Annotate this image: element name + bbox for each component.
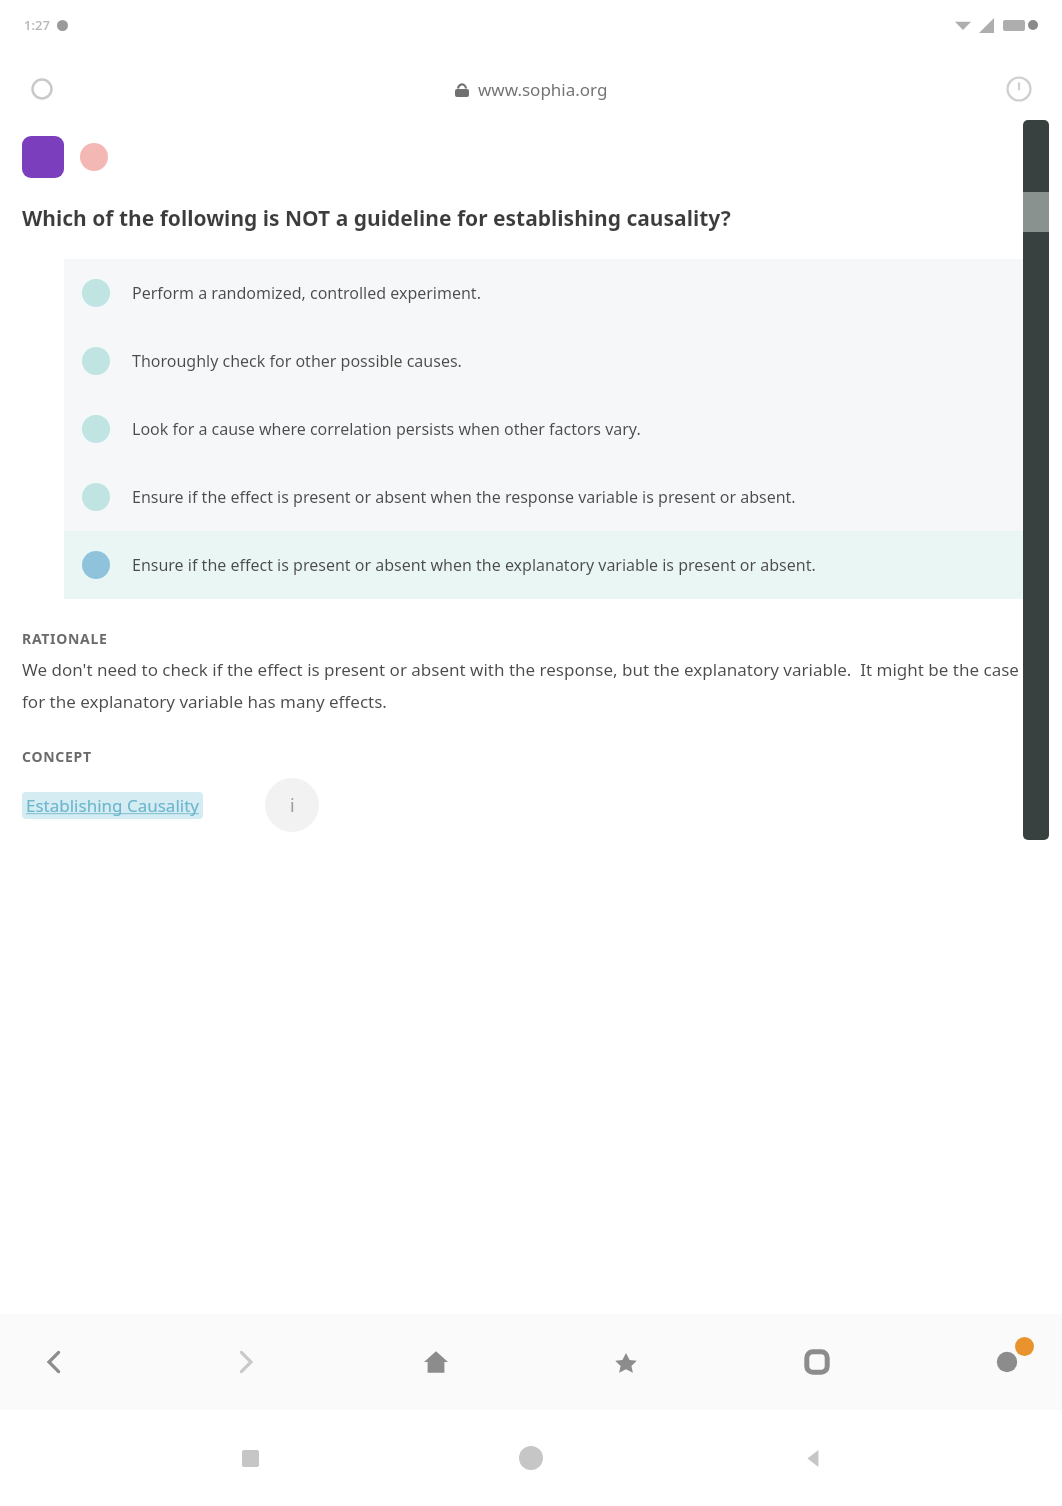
staticText: 1:27: [24, 16, 50, 34]
staticText: Establishing Causality: [26, 794, 199, 817]
button[interactable]: Thoroughly check for other possible caus…: [64, 327, 1024, 395]
button[interactable]: Home: [407, 1333, 465, 1391]
staticText: Ensure if the effect is present or absen…: [132, 554, 816, 576]
staticText: Which of the following is NOT a guidelin…: [22, 204, 731, 233]
button[interactable]: Ensure if the effect is present or absen…: [64, 463, 1024, 531]
button[interactable]: Perform a randomized, controlled experim…: [64, 259, 1024, 327]
staticText: i: [290, 793, 295, 818]
button[interactable]: More options: [996, 66, 1042, 112]
button[interactable]: Menu: [978, 1333, 1036, 1391]
button[interactable]: Bookmarks: [597, 1333, 655, 1391]
button[interactable]: Forward: [216, 1333, 274, 1391]
button[interactable]: Establishing Causality: [26, 794, 199, 817]
staticText: Thoroughly check for other possible caus…: [132, 350, 462, 372]
button[interactable]: Info: [265, 778, 319, 832]
staticText: We don't need to check if the effect is …: [22, 658, 1040, 713]
button[interactable]: Home: [500, 1427, 562, 1489]
staticText: RATIONALE: [22, 629, 108, 648]
button[interactable]: Back: [781, 1427, 843, 1489]
button[interactable]: Look for a cause where correlation persi…: [64, 395, 1024, 463]
staticText: Ensure if the effect is present or absen…: [132, 486, 796, 508]
button[interactable]: Reload: [20, 67, 64, 111]
staticText: Perform a randomized, controlled experim…: [132, 282, 481, 304]
staticText: CONCEPT: [22, 747, 92, 766]
button[interactable]: Sophia: [22, 136, 64, 178]
staticText: Look for a cause where correlation persi…: [132, 418, 641, 440]
staticText: www.sophia.org: [478, 78, 608, 101]
button[interactable]: Back: [26, 1333, 84, 1391]
button[interactable]: Ensure if the effect is present or absen…: [64, 531, 1024, 599]
button[interactable]: Recents: [219, 1427, 281, 1489]
button[interactable]: Tabs: [788, 1333, 846, 1391]
